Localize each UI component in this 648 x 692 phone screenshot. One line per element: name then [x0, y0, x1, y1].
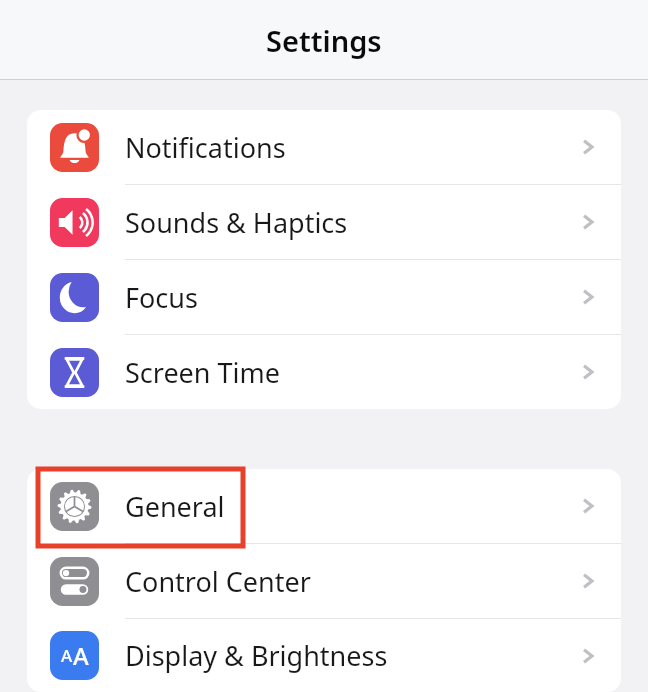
button[interactable]: General	[27, 469, 621, 544]
staticText: A	[61, 644, 73, 667]
staticText: Control Center	[125, 563, 311, 600]
button[interactable]: Screen Time	[27, 335, 621, 409]
staticText: Settings	[266, 21, 382, 60]
staticText: Sounds & Haptics	[125, 204, 348, 241]
staticText: General	[125, 488, 225, 525]
staticText: Notifications	[125, 129, 286, 166]
staticText: Display & Brightness	[125, 637, 388, 674]
staticText: Focus	[125, 279, 198, 316]
staticText: Screen Time	[125, 354, 281, 391]
button[interactable]: A	[27, 619, 621, 692]
button[interactable]: Control Center	[27, 544, 621, 619]
button[interactable]: Sounds & Haptics	[27, 185, 621, 260]
staticText: A	[73, 639, 89, 672]
button[interactable]: Focus	[27, 260, 621, 335]
button[interactable]: Notifications	[27, 110, 621, 185]
